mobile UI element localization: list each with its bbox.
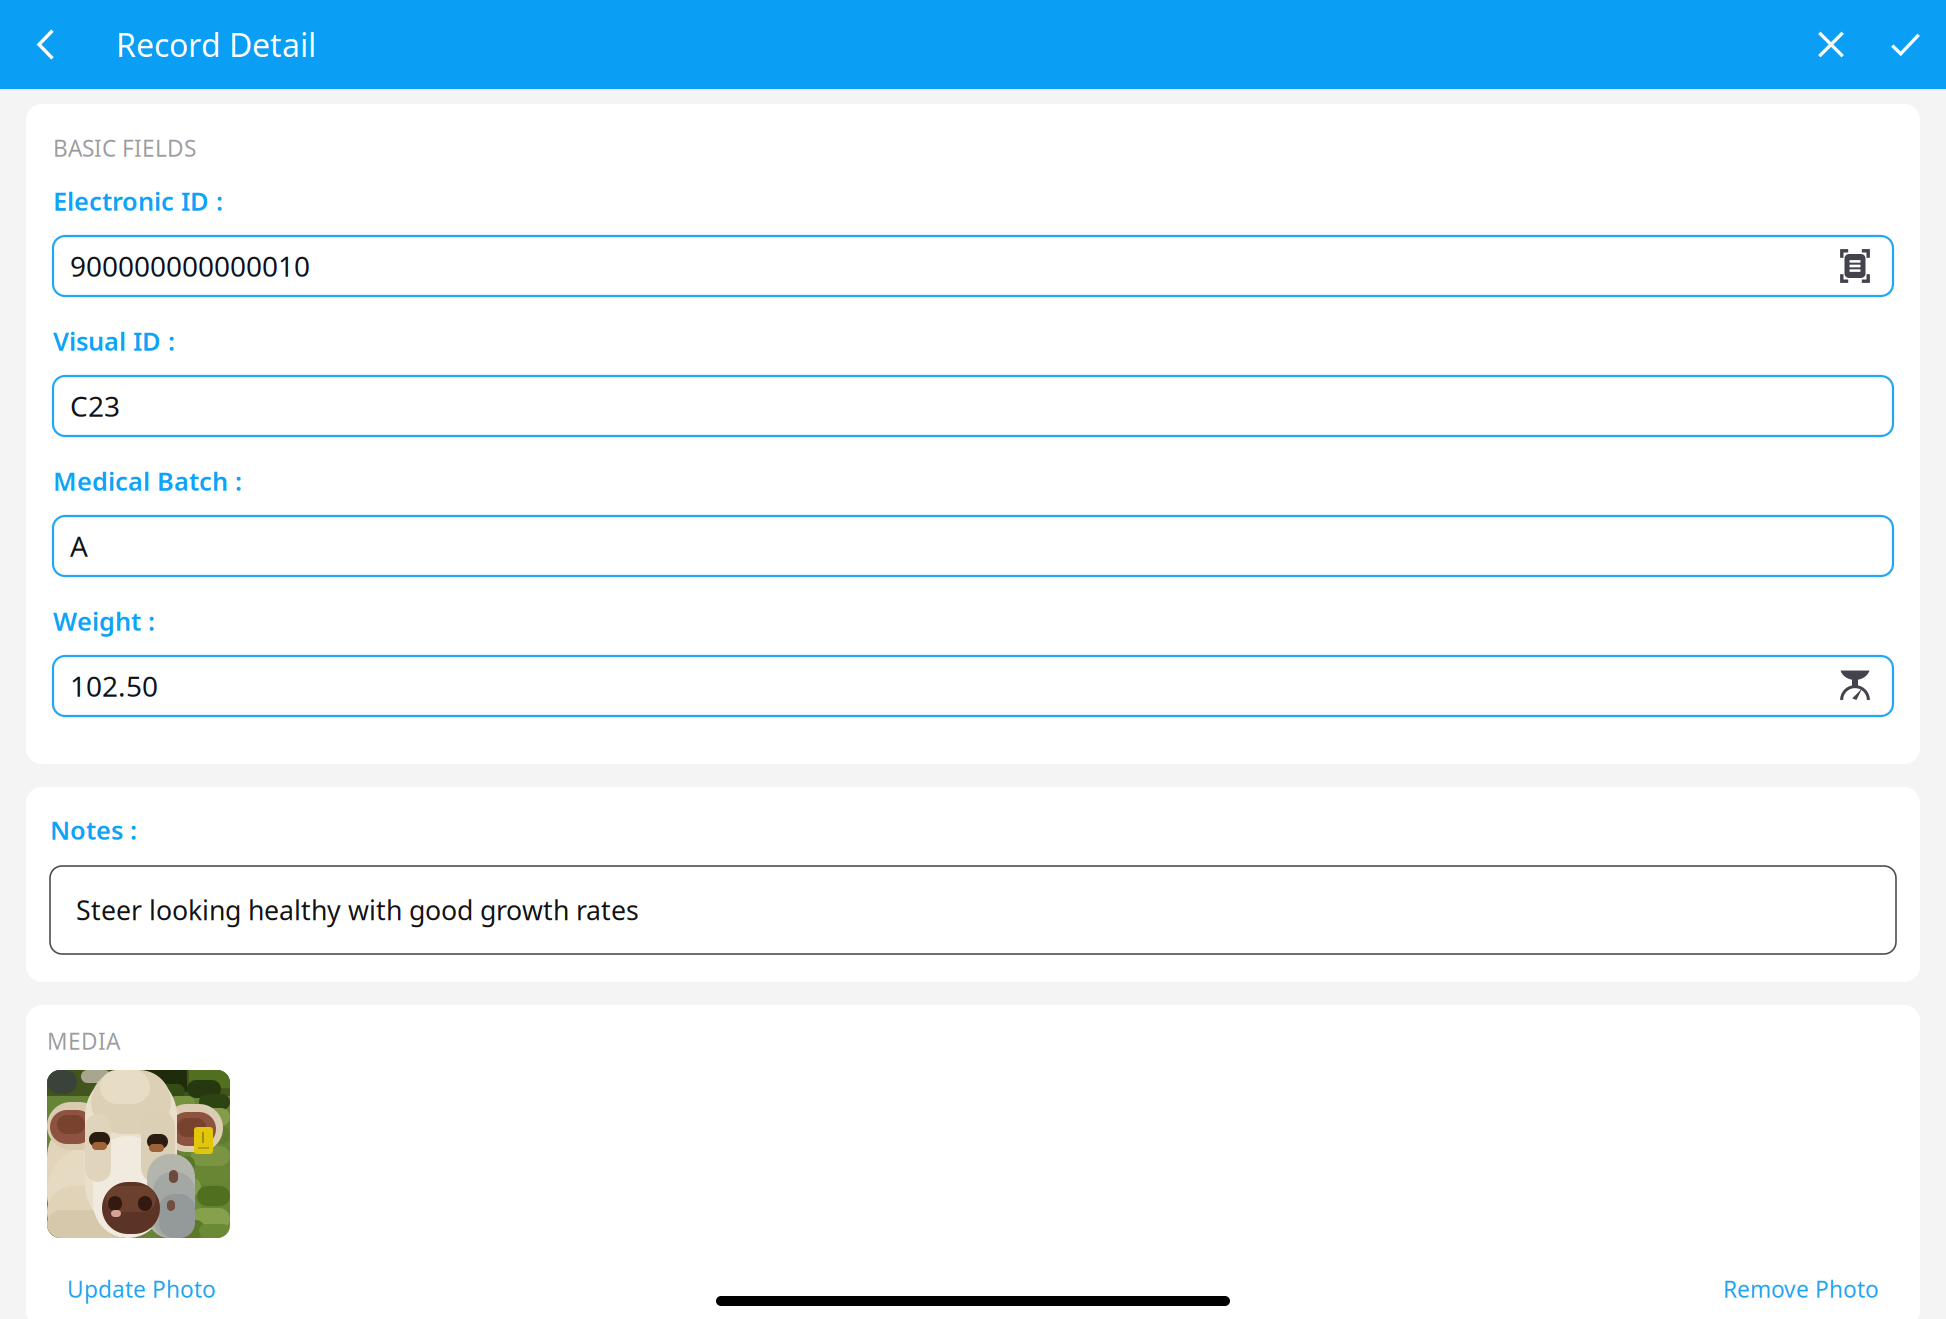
- button[interactable]: Discard: [1797, 0, 1865, 89]
- staticText: Steer looking healthy with good growth r…: [76, 892, 639, 928]
- button[interactable]: View photo: [47, 1070, 230, 1238]
- staticText: MEDIA: [47, 1026, 120, 1056]
- staticText: Weight :: [53, 604, 155, 638]
- staticText: A: [70, 527, 88, 565]
- staticText: Update Photo: [67, 1274, 216, 1304]
- button[interactable]: Remove Photo: [1723, 1274, 1879, 1304]
- button[interactable]: Back: [0, 0, 92, 89]
- button[interactable]: Weigh animal: [1833, 664, 1877, 708]
- staticText: Notes :: [50, 813, 137, 847]
- button[interactable]: Save: [1865, 0, 1946, 89]
- staticText: Record Detail: [116, 23, 316, 66]
- staticText: Remove Photo: [1723, 1274, 1879, 1304]
- button[interactable]: Scan electronic tag: [1833, 244, 1877, 288]
- staticText: Medical Batch :: [53, 464, 242, 498]
- staticText: BASIC FIELDS: [53, 133, 196, 163]
- staticText: 900000000000010: [70, 247, 310, 285]
- staticText: 102.50: [70, 667, 158, 705]
- button[interactable]: Update Photo: [67, 1274, 216, 1304]
- staticText: Visual ID :: [53, 324, 175, 358]
- staticText: C23: [70, 387, 120, 425]
- staticText: Electronic ID :: [53, 184, 223, 218]
